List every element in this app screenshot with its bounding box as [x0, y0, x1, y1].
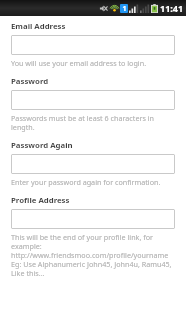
staticText: Email Address: [11, 21, 66, 32]
button[interactable]: [11, 90, 175, 110]
staticText: Passwords must be at least 6 characters …: [11, 113, 175, 133]
staticText: You will use your email address to login…: [11, 58, 147, 68]
staticText: 11:41: [160, 2, 184, 14]
button[interactable]: [11, 154, 175, 174]
staticText: Enter your password again for confirmati…: [11, 177, 161, 187]
staticText: Password: [11, 76, 49, 87]
staticText: Password Again: [11, 140, 73, 151]
staticText: This will be the end of your profile lin…: [11, 232, 175, 279]
button[interactable]: [11, 209, 175, 229]
button[interactable]: [11, 35, 175, 55]
staticText: 1: [122, 4, 127, 13]
staticText: Profile Address: [11, 195, 70, 206]
